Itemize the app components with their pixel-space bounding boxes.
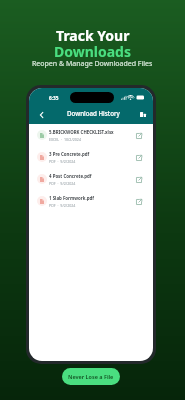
button[interactable]: 1 Slab Formwork.pdf — [29, 190, 153, 212]
staticText: 1 Slab Formwork.pdf — [49, 195, 94, 201]
button[interactable]: Open file — [134, 197, 143, 206]
staticText: Reopen & Manage Downloaded Files — [32, 59, 153, 69]
button[interactable]: 3 Pre Concrete.pdf — [29, 146, 153, 168]
button[interactable]: Open file — [134, 153, 143, 162]
staticText: 6:35 — [49, 95, 59, 102]
staticText: PDF · 9/2/2024 — [49, 159, 76, 164]
staticText: PDF · 9/2/2024 — [49, 181, 76, 186]
button[interactable]: Back — [36, 109, 47, 120]
button[interactable]: Open file — [134, 175, 143, 184]
button[interactable]: Storage — [137, 109, 148, 120]
staticText: EXCEL · 10/2/2024 — [49, 137, 81, 142]
button[interactable]: Never Lose a File — [62, 368, 120, 385]
staticText: Never Lose a File — [68, 373, 114, 380]
staticText: Download History — [67, 109, 120, 117]
staticText: PDF · 9/2/2024 — [49, 203, 76, 208]
button[interactable]: 5.BRICKWORK CHECKLIST.xlsx — [29, 124, 153, 146]
staticText: 3 Pre Concrete.pdf — [49, 151, 90, 157]
staticText: 4 Post Concrete.pdf — [49, 173, 92, 179]
staticText: Downloads — [54, 42, 131, 61]
staticText: 5.BRICKWORK CHECKLIST.xlsx — [49, 129, 114, 135]
button[interactable]: Open file — [134, 131, 143, 140]
staticText: Track Your — [56, 26, 130, 45]
button[interactable]: 4 Post Concrete.pdf — [29, 168, 153, 190]
